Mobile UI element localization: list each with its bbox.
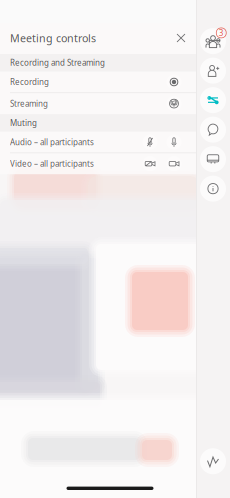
button[interactable]: Start recording xyxy=(165,73,183,91)
button[interactable]: Mute all xyxy=(141,133,159,151)
button[interactable]: Meeting controls xyxy=(198,85,228,115)
staticText: Recording xyxy=(10,77,49,87)
button[interactable]: Streaming xyxy=(0,93,196,114)
button[interactable]: Start streaming xyxy=(165,95,183,113)
button[interactable]: Participants xyxy=(198,26,228,56)
staticText: Streaming xyxy=(10,98,48,109)
button[interactable]: Close xyxy=(170,27,192,49)
staticText: Video – all participants xyxy=(10,158,94,169)
button[interactable]: Share content xyxy=(198,144,228,174)
button[interactable]: Meeting information xyxy=(198,174,228,203)
staticText: Muting xyxy=(10,117,37,128)
button[interactable]: Recording xyxy=(0,71,196,92)
button[interactable]: Stop all video xyxy=(141,155,159,173)
staticText: Meeting controls xyxy=(10,31,96,45)
staticText: 3 xyxy=(219,28,224,38)
staticText: Audio – all participants xyxy=(10,137,94,147)
button[interactable]: Video – all participants xyxy=(0,153,196,174)
button[interactable]: Chat xyxy=(198,115,228,144)
staticText: Recording and Streaming xyxy=(10,57,105,68)
button[interactable]: Start all video xyxy=(165,155,183,173)
button[interactable]: Unmute all xyxy=(165,133,183,151)
button[interactable]: Connection statistics xyxy=(198,446,228,476)
button[interactable]: Add participant xyxy=(198,56,228,85)
button[interactable]: Audio – all participants xyxy=(0,132,196,153)
